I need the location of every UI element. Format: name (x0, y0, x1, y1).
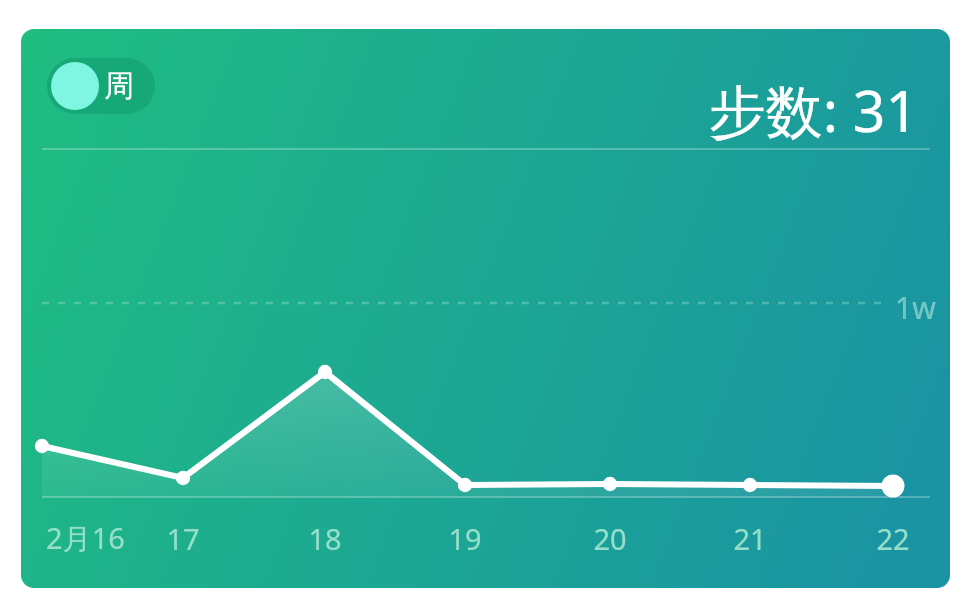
staticText: 2月16 (46, 518, 125, 558)
staticText: 19 (448, 519, 482, 558)
staticText: 18 (308, 519, 342, 558)
staticText: 22 (876, 519, 910, 558)
staticText: 1w (895, 287, 936, 328)
staticText: 周 (104, 67, 134, 105)
staticText: 17 (166, 519, 200, 558)
staticText: 步数: 31 (708, 71, 918, 149)
staticText: 21 (733, 519, 767, 558)
button[interactable]: 切换周视图 (21, 29, 950, 588)
button[interactable]: 切换周视图 (47, 58, 155, 114)
staticText: 20 (593, 519, 627, 558)
